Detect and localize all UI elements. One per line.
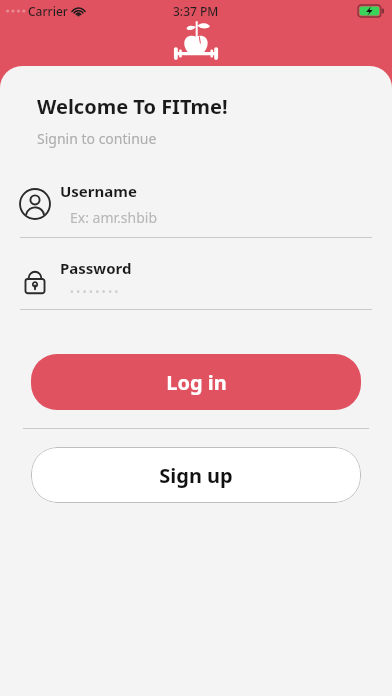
other: FITme logo bbox=[173, 20, 219, 62]
staticText: Log in bbox=[166, 369, 227, 396]
other: Username bbox=[18, 187, 52, 221]
staticText: 3:37 PM bbox=[173, 3, 219, 19]
staticText: Username bbox=[60, 181, 137, 201]
staticText: Sign up bbox=[159, 462, 233, 489]
staticText: Welcome To FITme! bbox=[37, 93, 228, 120]
button[interactable]: Sign up bbox=[31, 447, 361, 503]
button[interactable]: Log in bbox=[31, 354, 361, 410]
other: Password bbox=[18, 262, 52, 296]
button[interactable]: Password bbox=[18, 258, 372, 299]
staticText: Carrier bbox=[28, 3, 68, 19]
staticText: Password bbox=[60, 258, 132, 278]
staticText: • • • • • • • • bbox=[70, 285, 119, 299]
staticText: Signin to continue bbox=[37, 129, 157, 148]
button[interactable]: Username bbox=[18, 181, 372, 227]
staticText: Ex: amr.shbib bbox=[70, 208, 158, 227]
